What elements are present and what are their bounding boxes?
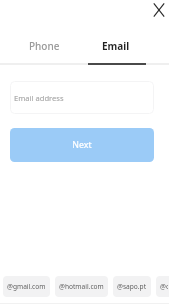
- button[interactable]: @outlook.com: [156, 276, 169, 297]
- staticText: Email: [102, 39, 130, 53]
- button[interactable]: @sapo.pt: [113, 276, 151, 297]
- staticText: @sapo.pt: [117, 282, 147, 291]
- staticText: Phone: [29, 39, 60, 53]
- staticText: @hotmail.com: [59, 282, 104, 291]
- button[interactable]: Phone: [0, 32, 88, 59]
- staticText: Next: [72, 139, 92, 151]
- button[interactable]: @hotmail.com: [55, 276, 108, 297]
- staticText: Email address: [14, 93, 64, 103]
- staticText: @outlook.com: [160, 282, 168, 291]
- button[interactable]: Email address: [10, 81, 154, 114]
- staticText: @gmail.com: [7, 282, 46, 291]
- button[interactable]: @gmail.com: [3, 276, 50, 297]
- button[interactable]: Email: [88, 32, 144, 59]
- button[interactable]: Close: [147, 0, 169, 22]
- button[interactable]: Next: [10, 128, 154, 162]
